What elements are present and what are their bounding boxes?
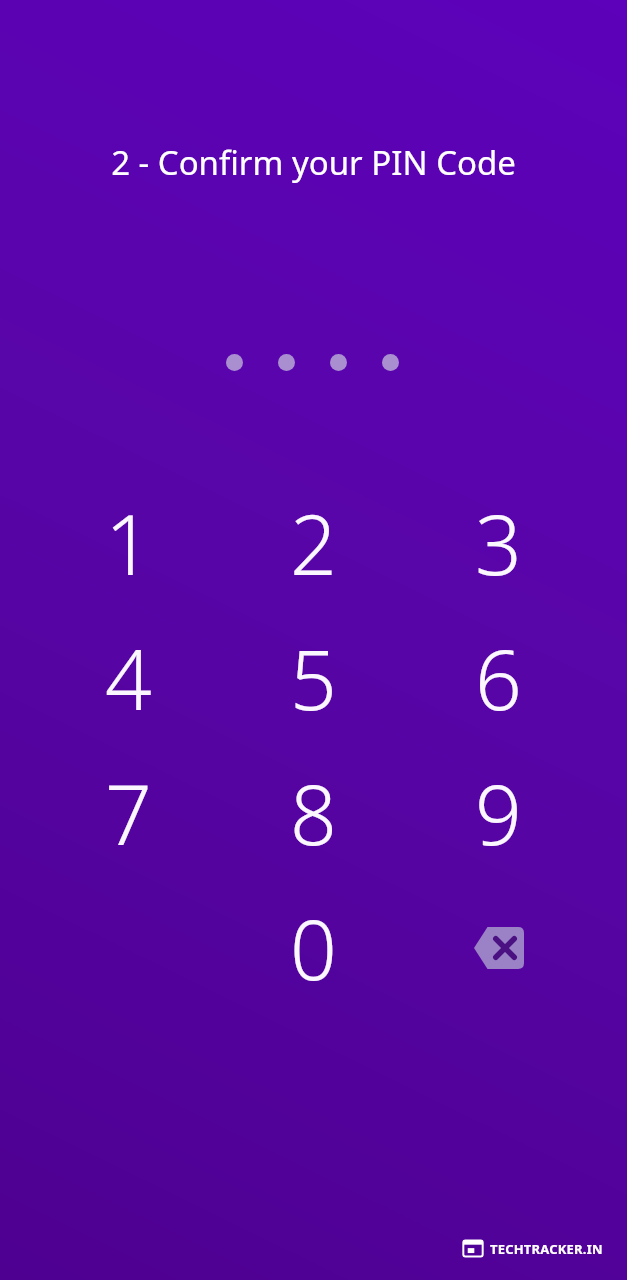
staticText: 6 bbox=[475, 622, 522, 734]
staticText: 0 bbox=[290, 892, 337, 1004]
button[interactable]: 3 bbox=[406, 475, 591, 610]
button[interactable]: 0 bbox=[221, 880, 406, 1015]
button[interactable]: 8 bbox=[221, 745, 406, 880]
button[interactable]: 6 bbox=[406, 610, 591, 745]
button[interactable]: Backspace bbox=[406, 880, 591, 1015]
button[interactable]: 5 bbox=[221, 610, 406, 745]
button[interactable]: 4 bbox=[36, 610, 221, 745]
staticText: 4 bbox=[105, 622, 152, 734]
staticText: 5 bbox=[290, 622, 337, 734]
staticText: 2 bbox=[290, 487, 337, 599]
button[interactable]: 9 bbox=[406, 745, 591, 880]
button[interactable]: 2 bbox=[221, 475, 406, 610]
staticText: 1 bbox=[105, 487, 152, 599]
button[interactable]: 7 bbox=[36, 745, 221, 880]
staticText: 9 bbox=[475, 757, 522, 869]
staticText: 2 - Confirm your PIN Code bbox=[111, 140, 516, 185]
staticText: 8 bbox=[290, 757, 337, 869]
staticText: 3 bbox=[475, 487, 522, 599]
staticText: 7 bbox=[105, 757, 152, 869]
staticText: TECHTRACKER.IN bbox=[490, 1240, 603, 1258]
button[interactable]: 1 bbox=[36, 475, 221, 610]
